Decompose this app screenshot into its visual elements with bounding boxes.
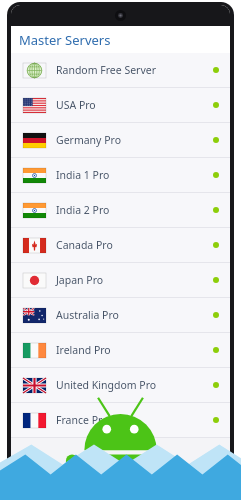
staticText: Ireland Pro	[56, 343, 111, 357]
other: Online	[209, 168, 223, 182]
button[interactable]: Ireland Pro	[11, 333, 230, 367]
staticText: Australia Pro	[56, 308, 119, 322]
staticText: USA Pro	[56, 98, 96, 112]
staticText: Canada Pro	[56, 238, 113, 252]
button[interactable]: Canada Pro	[11, 228, 230, 262]
other: Online	[209, 273, 223, 287]
other: Online	[209, 203, 223, 217]
button[interactable]: Australia Pro	[11, 298, 230, 332]
staticText: India 2 Pro	[56, 203, 110, 217]
staticText: Germany Pro	[56, 133, 122, 147]
button[interactable]: Germany Pro	[11, 123, 230, 157]
button[interactable]: Random Free Server	[11, 53, 230, 87]
other: Online	[209, 308, 223, 322]
button[interactable]: France Pro	[11, 403, 230, 437]
button[interactable]: India 2 Pro	[11, 193, 230, 227]
button[interactable]: United Kingdom Pro	[11, 368, 230, 402]
staticText: United Kingdom Pro	[56, 378, 157, 392]
button[interactable]: USA Pro	[11, 88, 230, 122]
other: Online	[209, 98, 223, 112]
other: Online	[209, 343, 223, 357]
staticText: India 1 Pro	[56, 168, 110, 182]
other: Online	[209, 133, 223, 147]
staticText: Random Free Server	[56, 63, 157, 77]
staticText: Master Servers	[19, 31, 111, 49]
staticText: Japan Pro	[56, 273, 104, 287]
other: Online	[209, 238, 223, 252]
other: Online	[209, 378, 223, 392]
staticText: France Pro	[56, 413, 109, 427]
button[interactable]: India 1 Pro	[11, 158, 230, 192]
other: Online	[209, 413, 223, 427]
button[interactable]: Japan Pro	[11, 263, 230, 297]
other: Online	[209, 63, 223, 77]
